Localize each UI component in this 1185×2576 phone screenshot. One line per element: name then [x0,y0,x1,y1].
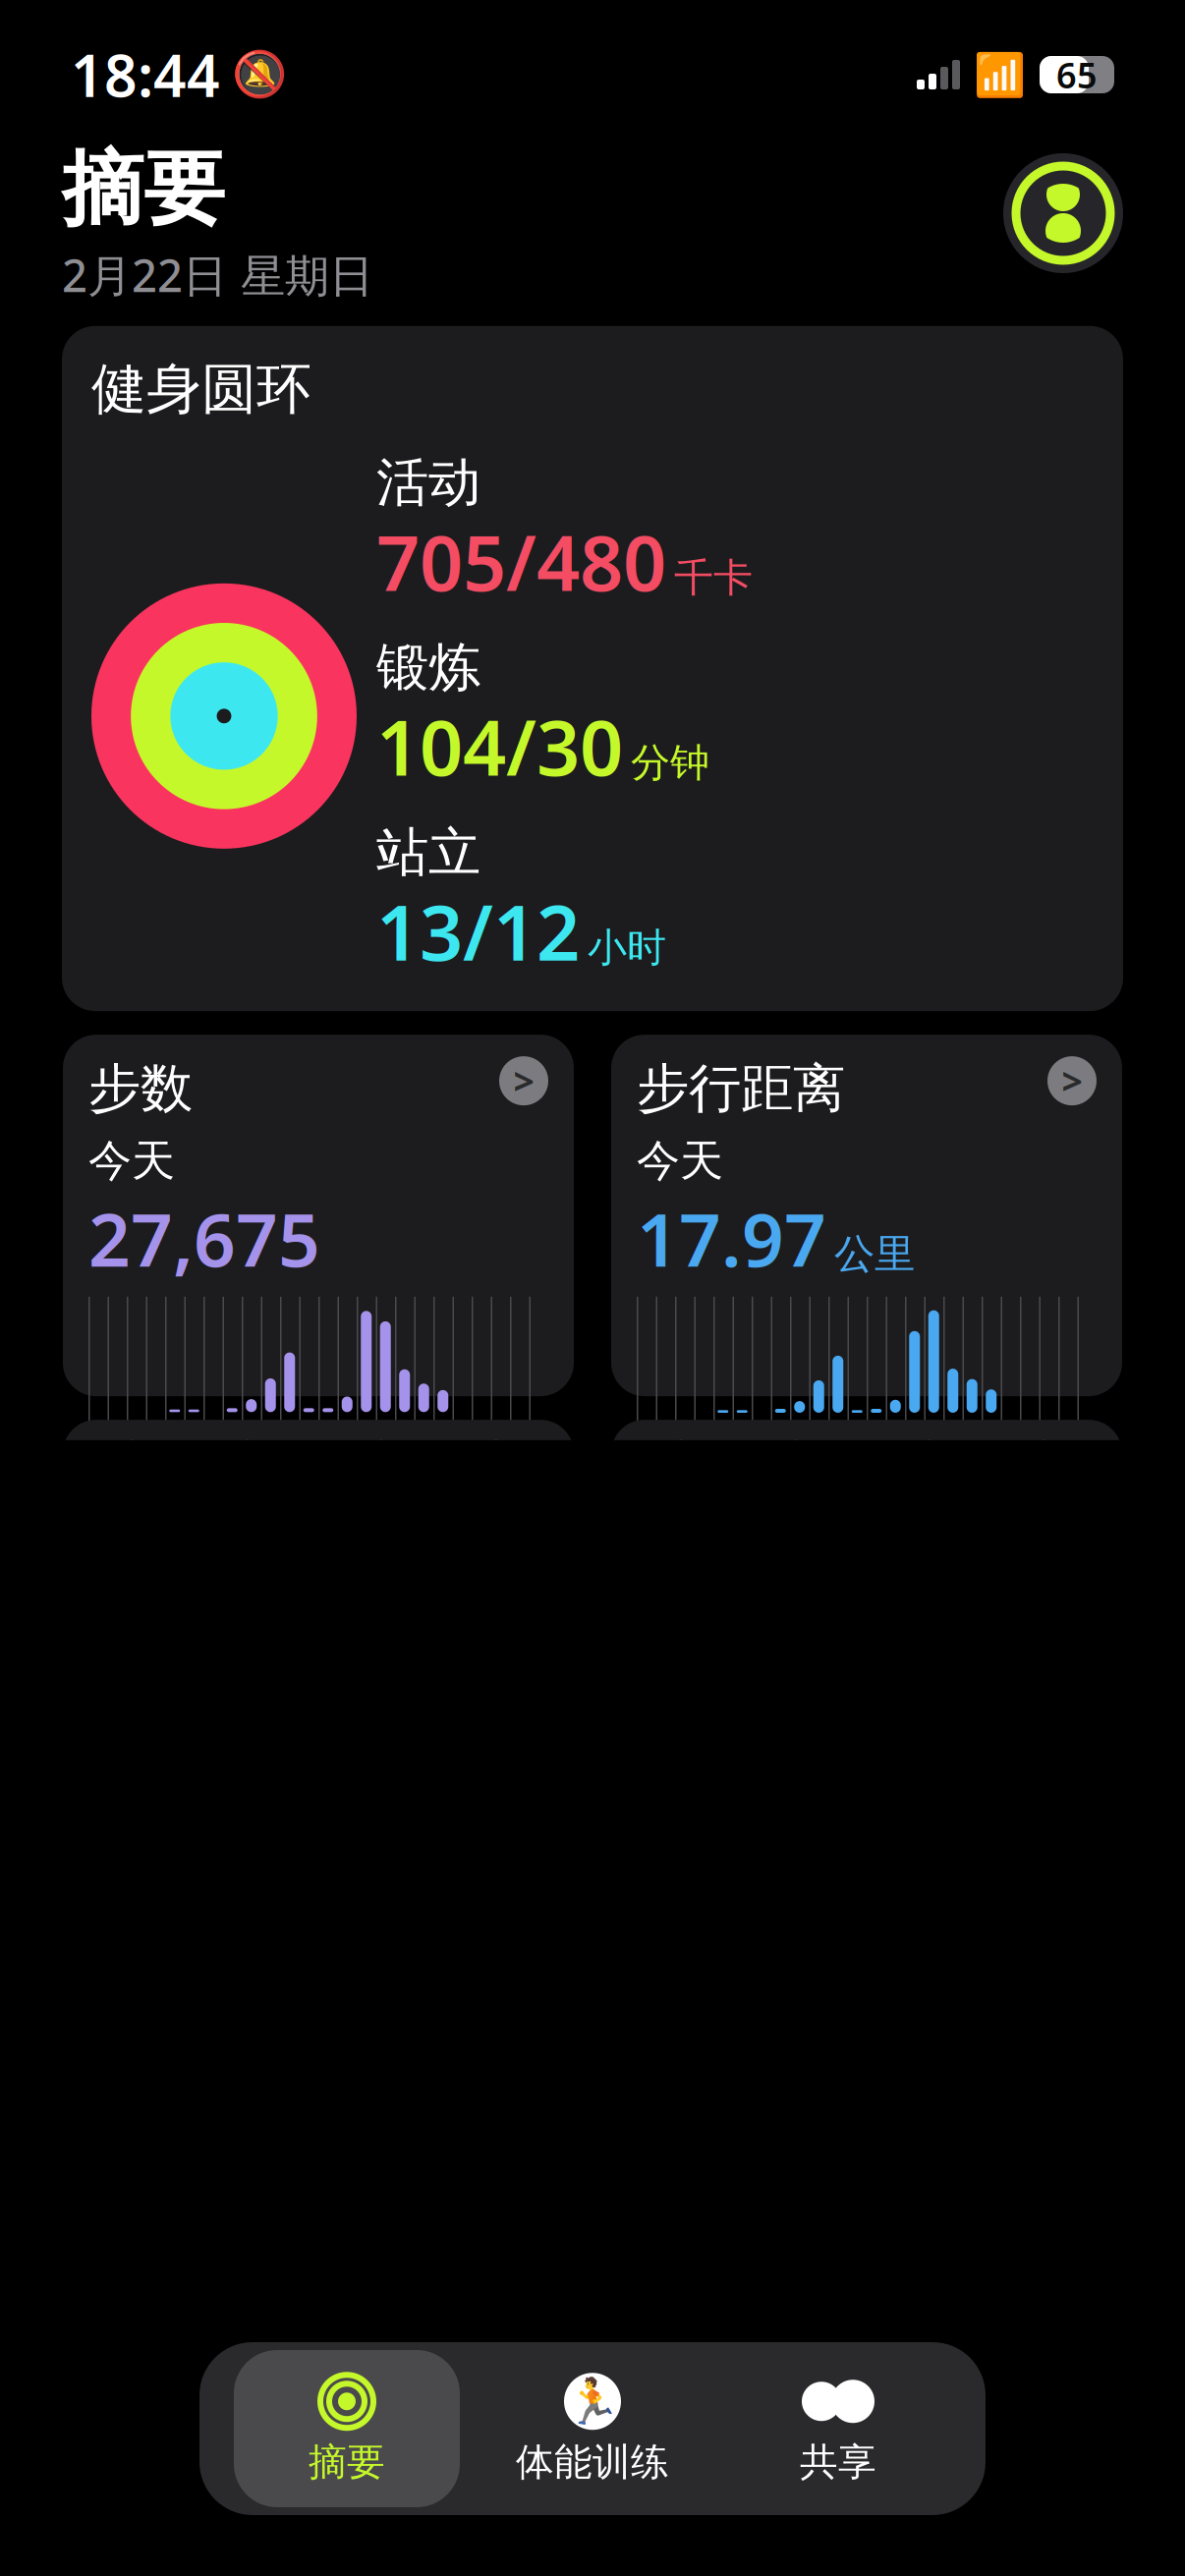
staticText: 健身圆环 [91,355,311,423]
staticText: 摘要 [62,140,225,239]
staticText: 12时 [867,1432,936,1476]
staticText: 18时 [433,1432,503,1476]
staticText: 27,675 [88,1189,320,1287]
staticText: 17.97 [637,1189,826,1287]
staticText: 公里 [834,1229,915,1279]
staticText: > [1062,1056,1082,1105]
staticText: 0时 [637,1432,688,1476]
staticText: 18时 [982,1432,1051,1476]
staticText: > [513,1056,534,1105]
staticText: 步数 [88,1056,193,1121]
button[interactable]: 摘要 [234,2350,460,2507]
staticText: 18:44 [71,36,220,113]
staticText: 摘要 [309,2439,385,2485]
staticText: 6时 [203,1432,254,1476]
staticText: 705/480 [376,511,666,612]
staticText: 今天 [88,1134,175,1187]
staticText: 体能训练 [516,2439,669,2485]
staticText: 活动 [376,450,480,515]
staticText: 0时 [88,1432,140,1476]
staticText: 📶 [974,51,1026,99]
button[interactable]: 健身圆环 [62,326,1123,1011]
staticText: 🏃 [565,2376,620,2427]
button[interactable]: 🏃 [480,2350,705,2507]
button[interactable]: 个人资料 [1003,153,1123,273]
staticText: 千卡 [674,554,753,602]
button[interactable]: 步数 [63,1035,574,1396]
staticText: 锻炼 [376,635,480,700]
button[interactable]: 训练与练习 [63,1420,574,1781]
staticText: 分钟 [631,739,709,787]
button[interactable]: 奖章 [611,1420,1122,1781]
staticText: 104/30 [376,696,623,797]
staticText: 65 [1056,51,1098,98]
button[interactable]: 步行距离 [611,1035,1122,1396]
staticText: 小时 [588,924,666,972]
staticText: 6时 [752,1432,803,1476]
button[interactable]: 共享 [725,2350,951,2507]
staticText: 共享 [800,2439,876,2485]
staticText: 13/12 [376,881,580,982]
staticText: 步行距离 [637,1056,845,1121]
staticText: 12时 [318,1432,388,1476]
staticText: 站立 [376,820,480,885]
staticText: 🔕 [232,49,287,100]
staticText: 2月22日 星期日 [62,245,373,304]
staticText: 今天 [637,1134,723,1187]
